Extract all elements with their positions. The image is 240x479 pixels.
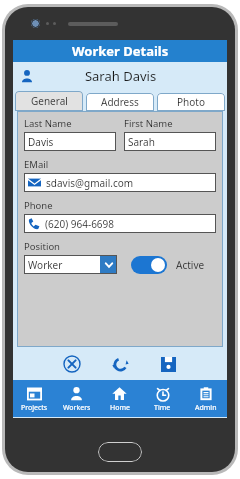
staticText: EMail (24, 158, 49, 171)
button[interactable]: Address (86, 93, 154, 111)
staticText: Home (110, 403, 130, 413)
staticText: Address (101, 95, 139, 109)
button[interactable]: Admin (184, 380, 227, 417)
staticText: Phone (24, 199, 53, 212)
staticText: sdavis@gmail.com (46, 176, 134, 190)
staticText: Worker Details (72, 42, 169, 60)
button[interactable]: Save (155, 351, 181, 377)
staticText: Photo (177, 95, 205, 109)
button[interactable]: Worker Details (13, 40, 227, 62)
button[interactable]: Davis (24, 132, 116, 151)
staticText: First Name (124, 117, 173, 130)
staticText: Active (176, 258, 205, 272)
staticText: (620) 964-6698 (45, 217, 115, 231)
button[interactable]: Projects (13, 380, 55, 417)
staticText: Sarah (128, 135, 155, 149)
staticText: Davis (28, 135, 54, 149)
button[interactable]: sdavis@gmail.com (24, 173, 216, 192)
staticText: Projects (21, 403, 48, 413)
staticText: Worker (28, 258, 100, 272)
button[interactable]: Cancel (59, 351, 85, 377)
button[interactable]: General (15, 91, 83, 111)
staticText: Last Name (24, 117, 72, 130)
button[interactable]: Home button (98, 442, 142, 462)
staticText: Admin (195, 403, 217, 413)
button[interactable]: Refresh (107, 351, 133, 377)
staticText: Workers (63, 403, 91, 413)
staticText: Sarah Davis (34, 67, 207, 85)
button[interactable]: Workers (55, 380, 98, 417)
button[interactable]: Active toggle (131, 256, 167, 274)
button[interactable]: Time (141, 380, 184, 417)
button[interactable]: Home (98, 380, 141, 417)
button[interactable]: Sarah (124, 132, 216, 151)
button[interactable]: Worker (24, 255, 117, 274)
button[interactable]: (620) 964-6698 (24, 214, 216, 233)
staticText: Position (24, 240, 60, 253)
button[interactable]: Photo (157, 93, 225, 111)
staticText: General (31, 94, 68, 108)
staticText: Time (154, 403, 171, 413)
